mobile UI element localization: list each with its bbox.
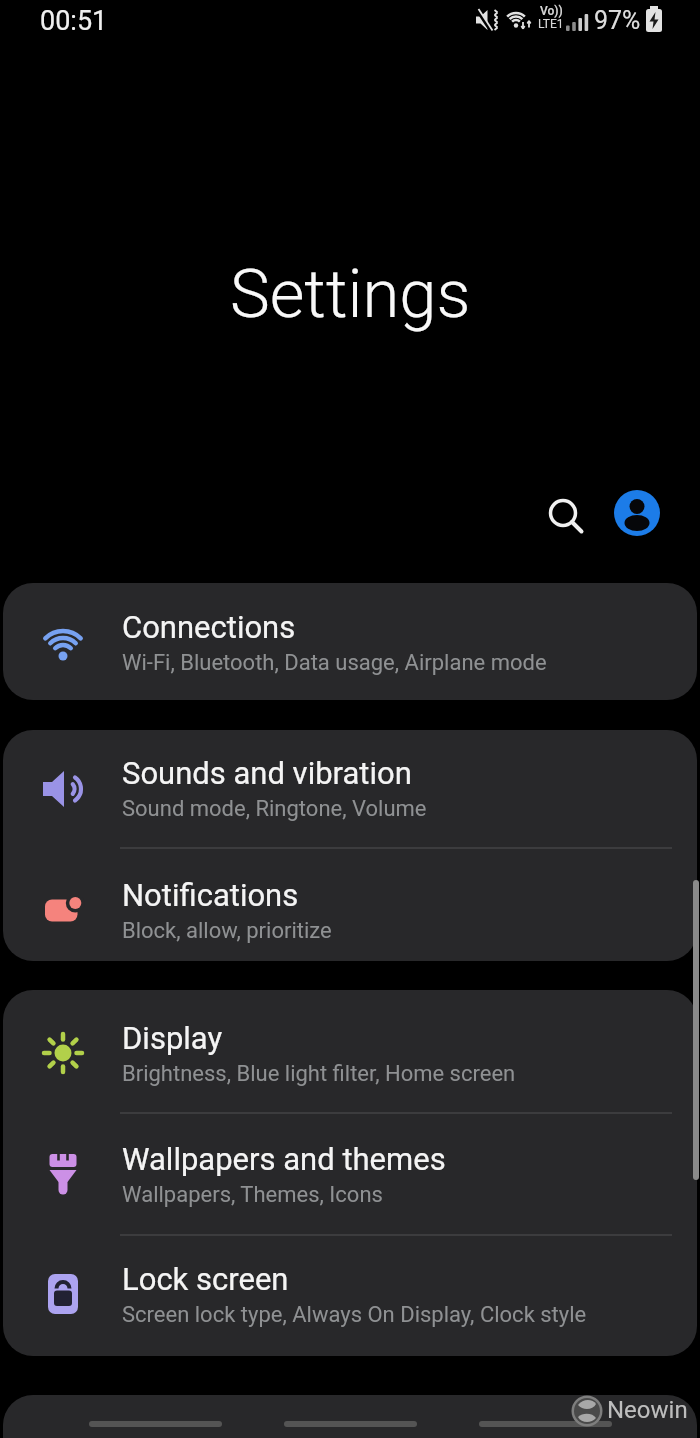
staticText: Wi-Fi, Bluetooth, Data usage, Airplane m… <box>122 650 547 676</box>
staticText: Connections <box>122 609 296 645</box>
button[interactable]: Connections <box>3 583 697 700</box>
staticText: Screen lock type, Always On Display, Clo… <box>122 1302 587 1328</box>
staticText: Neowin <box>607 1396 688 1424</box>
staticText: Block, allow, prioritize <box>122 918 332 944</box>
button[interactable]: Display <box>3 990 697 1112</box>
staticText: Vo)) <box>540 4 563 18</box>
staticText: Sound mode, Ringtone, Volume <box>122 796 427 822</box>
staticText: 97% <box>594 6 641 35</box>
staticText: Brightness, Blue light filter, Home scre… <box>122 1061 516 1087</box>
button[interactable]: Notifications <box>3 849 697 961</box>
staticText: Wallpapers, Themes, Icons <box>122 1182 383 1208</box>
staticText: 00:51 <box>40 5 108 37</box>
staticText: Lock screen <box>122 1261 289 1297</box>
button[interactable]: Wallpapers and themes <box>3 1114 697 1234</box>
staticText: LTE1 <box>538 17 564 31</box>
button[interactable]: Sounds and vibration <box>3 730 697 847</box>
button[interactable]: Lock screen <box>3 1236 697 1356</box>
staticText: Settings <box>230 255 471 334</box>
staticText: Wallpapers and themes <box>122 1141 446 1177</box>
staticText: Notifications <box>122 877 299 913</box>
staticText: Display <box>122 1020 223 1056</box>
button[interactable] <box>614 490 660 536</box>
button[interactable] <box>540 490 590 540</box>
staticText: Sounds and vibration <box>122 755 412 791</box>
